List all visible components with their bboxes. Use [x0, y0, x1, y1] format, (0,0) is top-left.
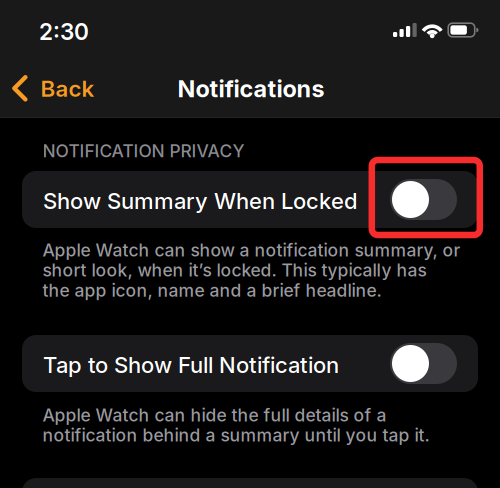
- staticText: Back: [40, 75, 94, 102]
- button[interactable]: Tap to Show Full Notification: [22, 335, 478, 392]
- staticText: Show Summary When Locked: [43, 188, 358, 214]
- button[interactable]: Show Summary When Locked: [22, 171, 478, 228]
- button[interactable]: Back: [0, 60, 112, 116]
- staticText: Notifications: [177, 74, 324, 103]
- staticText: Apple Watch can hide the full details of…: [42, 404, 429, 446]
- staticText: 2:30: [39, 18, 89, 45]
- staticText: Apple Watch can show a notification summ…: [42, 239, 460, 301]
- staticText: Tap to Show Full Notification: [43, 352, 339, 378]
- staticText: NOTIFICATION PRIVACY: [42, 140, 244, 161]
